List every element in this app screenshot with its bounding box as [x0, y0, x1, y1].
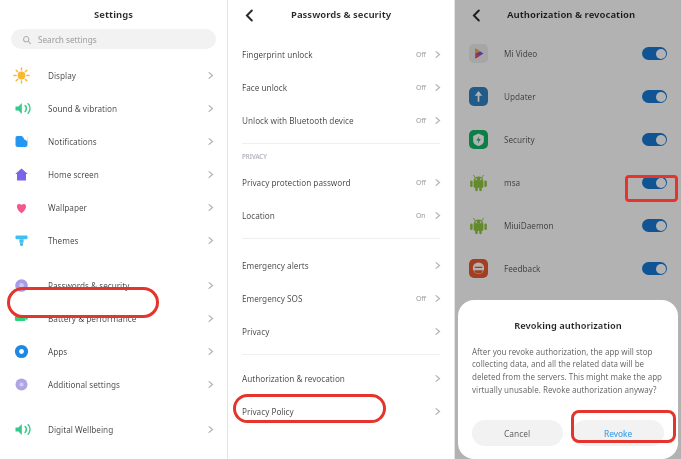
button[interactable]: Fingerprint unlock [228, 38, 454, 71]
staticText: Settings [94, 8, 133, 21]
staticText: Apps [48, 346, 206, 357]
button[interactable]: Location [228, 199, 454, 232]
staticText: Sound & vibration [48, 103, 206, 114]
button[interactable]: Toggle on [642, 133, 667, 146]
button[interactable]: Privacy Policy [228, 395, 454, 428]
button[interactable]: Battery & performance [0, 302, 227, 335]
staticText: Digital Wellbeing [48, 424, 206, 435]
staticText: Wallpaper [48, 202, 206, 213]
staticText: Privacy protection password [242, 177, 416, 188]
button[interactable]: Toggle on [642, 262, 667, 275]
button[interactable]: Authorization & revocation [228, 362, 454, 395]
staticText: Authorization & revocation [507, 8, 636, 21]
staticText: Location [242, 210, 416, 221]
button[interactable]: Search settings [11, 29, 216, 49]
button[interactable]: Revoke [572, 420, 664, 446]
staticText: Off [416, 178, 426, 187]
button[interactable]: MiuiDaemon [455, 204, 681, 247]
staticText: On [416, 211, 426, 220]
staticText: Privacy [242, 326, 433, 337]
button[interactable]: Cancel [472, 420, 563, 446]
staticText: Battery & performance [48, 313, 206, 324]
staticText: Revoke [604, 428, 633, 439]
button[interactable]: Face unlock [228, 71, 454, 104]
button[interactable]: Emergency SOS [228, 282, 454, 315]
staticText: Notifications [48, 136, 206, 147]
staticText: Emergency alerts [242, 260, 433, 271]
button[interactable]: Privacy [228, 315, 454, 348]
button[interactable]: Emergency alerts [228, 249, 454, 282]
button[interactable]: Toggle on [642, 90, 667, 103]
button[interactable]: Back [238, 4, 260, 26]
button[interactable]: Toggle on [642, 176, 667, 189]
button[interactable]: Themes [0, 224, 227, 257]
button[interactable]: Toggle on [642, 219, 667, 232]
button[interactable]: msa [455, 161, 681, 204]
button[interactable]: Additional settings [0, 368, 227, 401]
staticText: Off [416, 116, 426, 125]
button[interactable]: Mi Video [455, 32, 681, 75]
button[interactable]: Feedback [455, 247, 681, 290]
staticText: Revoking authorization [472, 319, 664, 332]
staticText: PRIVACY [242, 152, 267, 160]
staticText: Additional settings [48, 379, 206, 390]
button[interactable]: Updater [455, 75, 681, 118]
button[interactable]: Unlock with Bluetooth device [228, 104, 454, 137]
staticText: Off [416, 83, 426, 92]
button[interactable]: Privacy protection password [228, 166, 454, 199]
staticText: Authorization & revocation [242, 373, 433, 384]
staticText: Mi Video [504, 48, 642, 59]
staticText: Unlock with Bluetooth device [242, 115, 416, 126]
staticText: Home screen [48, 169, 206, 180]
button[interactable]: Sound & vibration [0, 92, 227, 125]
button[interactable]: Apps [0, 335, 227, 368]
button[interactable]: Wallpaper [0, 191, 227, 224]
staticText: Privacy Policy [242, 406, 433, 417]
button[interactable]: Notifications [0, 125, 227, 158]
staticText: MiuiDaemon [504, 220, 642, 231]
staticText: Passwords & security [48, 280, 206, 291]
staticText: Fingerprint unlock [242, 49, 416, 60]
staticText: Display [48, 70, 206, 81]
button[interactable]: Display [0, 59, 227, 92]
staticText: Cancel [504, 428, 531, 439]
button[interactable]: Home screen [0, 158, 227, 191]
button[interactable]: Toggle on [642, 47, 667, 60]
button[interactable]: Passwords & security [0, 269, 227, 302]
staticText: Passwords & security [291, 8, 392, 21]
staticText: Off [416, 294, 426, 303]
staticText: Search settings [38, 34, 97, 45]
button[interactable]: Security [455, 118, 681, 161]
button[interactable]: Digital Wellbeing [0, 413, 227, 446]
staticText: Themes [48, 235, 206, 246]
staticText: Emergency SOS [242, 293, 416, 304]
staticText: Updater [504, 91, 642, 102]
staticText: msa [504, 177, 642, 188]
staticText: After you revoke authorization, the app … [472, 346, 664, 395]
staticText: Face unlock [242, 82, 416, 93]
staticText: Security [504, 134, 642, 145]
staticText: Off [416, 50, 426, 59]
button[interactable]: Back [465, 4, 487, 26]
staticText: Feedback [504, 263, 642, 274]
